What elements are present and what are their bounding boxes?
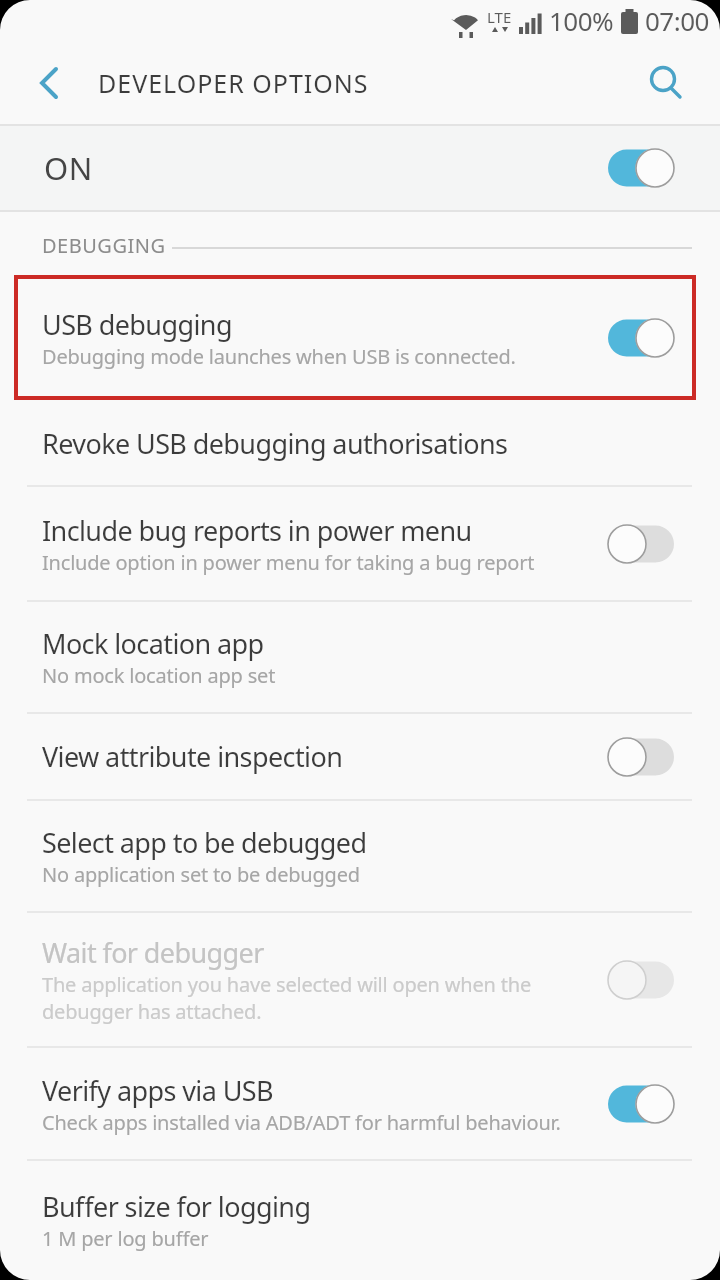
staticText: LTE: [487, 7, 512, 27]
button[interactable]: Verify apps via USB: [0, 1047, 720, 1160]
staticText: Include option in power menu for taking …: [42, 549, 535, 576]
staticText: 1 M per log buffer: [42, 1225, 209, 1252]
staticText: DEBUGGING: [42, 232, 166, 259]
button[interactable]: ON: [0, 125, 720, 211]
staticText: Check apps installed via ADB/ADT for har…: [42, 1109, 561, 1136]
button[interactable]: [642, 59, 690, 107]
staticText: Buffer size for logging: [42, 1188, 311, 1225]
staticText: Select app to be debugged: [42, 824, 367, 861]
staticText: 100%: [549, 3, 614, 38]
staticText: debugger has attached.: [42, 998, 262, 1025]
button[interactable]: View attribute inspection: [0, 713, 720, 800]
button[interactable]: Include bug reports in power menu: [0, 486, 720, 601]
staticText: Mock location app: [42, 625, 264, 662]
staticText: The application you have selected will o…: [42, 971, 531, 998]
staticText: Verify apps via USB: [42, 1072, 273, 1109]
staticText: Debugging mode launches when USB is conn…: [42, 343, 516, 370]
staticText: 07:00: [645, 3, 709, 38]
staticText: No application set to be debugged: [42, 861, 360, 888]
button[interactable]: Wait for debugger: [0, 912, 720, 1047]
staticText: Include bug reports in power menu: [42, 512, 472, 549]
button[interactable]: USB debugging: [0, 275, 720, 401]
staticText: View attribute inspection: [42, 738, 343, 775]
button[interactable]: Buffer size for logging: [0, 1160, 720, 1280]
staticText: DEVELOPER OPTIONS: [98, 66, 369, 100]
button[interactable]: Revoke USB debugging authorisations: [0, 401, 720, 486]
button[interactable]: Select app to be debugged: [0, 800, 720, 912]
staticText: Revoke USB debugging authorisations: [42, 425, 508, 462]
staticText: No mock location app set: [42, 662, 276, 689]
staticText: USB debugging: [42, 306, 232, 343]
staticText: ON: [44, 147, 93, 189]
button[interactable]: [28, 61, 72, 105]
button[interactable]: Mock location app: [0, 601, 720, 713]
staticText: Wait for debugger: [42, 934, 264, 971]
